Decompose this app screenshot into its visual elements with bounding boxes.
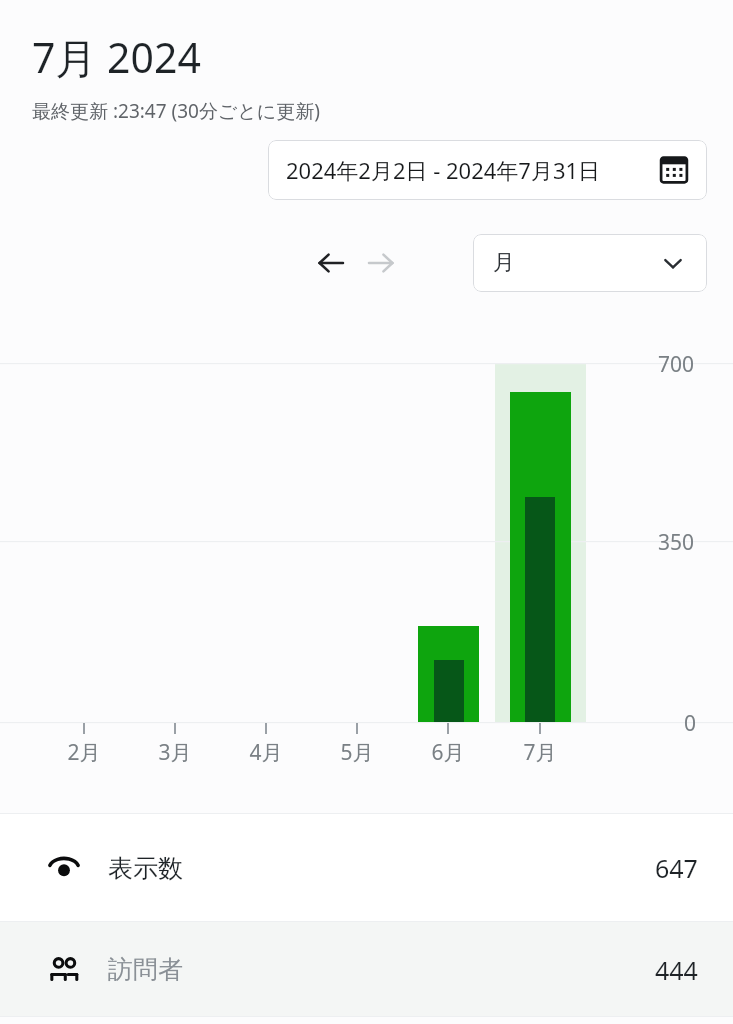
staticText: 0 xyxy=(684,709,697,738)
staticText: 2024年2月2日 - 2024年7月31日 xyxy=(286,155,601,185)
button[interactable]: 月 xyxy=(473,234,707,292)
staticText: 2月 xyxy=(67,738,101,767)
staticText: 7月 xyxy=(523,738,557,767)
staticText: 444 xyxy=(655,953,698,987)
button[interactable]: Previous period xyxy=(306,238,356,288)
staticText: 647 xyxy=(655,851,698,885)
staticText: 4月 xyxy=(249,738,283,767)
staticText: 表示数 xyxy=(108,853,183,884)
staticText: 700 xyxy=(658,350,695,379)
staticText: 350 xyxy=(658,528,695,557)
button[interactable]: 表示数 xyxy=(0,814,733,922)
button[interactable]: Next period xyxy=(356,238,406,288)
staticText: 7月 2024 xyxy=(32,29,201,85)
staticText: 6月 xyxy=(431,738,465,767)
staticText: 3月 xyxy=(158,738,192,767)
staticText: 5月 xyxy=(340,738,374,767)
staticText: 月 xyxy=(493,249,515,277)
button[interactable]: 2024年2月2日 - 2024年7月31日 xyxy=(268,140,707,200)
staticText: 最終更新 :23:47 (30分ごとに更新) xyxy=(32,98,321,124)
staticText: 訪問者 xyxy=(108,954,183,985)
button[interactable]: 訪問者 xyxy=(0,922,733,1017)
